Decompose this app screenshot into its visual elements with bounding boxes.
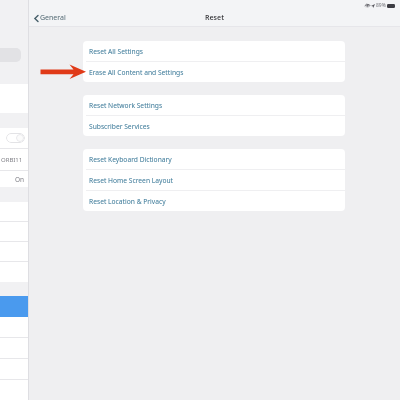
staticText: On [15,175,25,184]
staticText: Reset [205,13,224,23]
button[interactable]: Wi-Fi toggle [0,128,29,148]
staticText: Reset Keyboard Dictionary [89,155,172,164]
button[interactable] [0,380,29,400]
staticText: Erase All Content and Settings [89,68,184,77]
staticText: 89% [376,2,386,9]
staticText: Reset Home Screen Layout [89,176,174,185]
staticText: General [40,13,66,23]
button[interactable] [0,338,29,358]
button[interactable] [0,222,29,241]
button[interactable] [0,359,29,379]
button[interactable] [0,262,29,282]
button[interactable]: Reset Keyboard Dictionary [83,149,345,169]
button[interactable]: General, selected [0,296,29,317]
button[interactable] [0,202,29,221]
button[interactable]: Reset Network Settings [83,95,345,115]
other: Annotation arrow pointing to Erase All C… [0,0,400,400]
button[interactable] [0,317,29,337]
button[interactable]: ORBI11 [0,149,29,170]
button[interactable]: Reset All Settings [83,41,345,61]
button[interactable] [0,84,29,113]
staticText: Subscriber Services [89,122,150,131]
button[interactable]: On [0,171,29,187]
button[interactable]: Reset Location & Privacy [83,191,345,211]
button[interactable] [0,242,29,261]
staticText: Reset All Settings [89,47,143,56]
staticText: ORBI11 [1,156,23,164]
staticText: Reset Network Settings [89,101,163,110]
button[interactable]: Reset Home Screen Layout [83,170,345,190]
button[interactable]: Erase All Content and Settings [83,62,345,82]
button[interactable]: General [29,11,70,25]
staticText: Reset Location & Privacy [89,197,166,206]
button[interactable]: Subscriber Services [83,116,345,136]
